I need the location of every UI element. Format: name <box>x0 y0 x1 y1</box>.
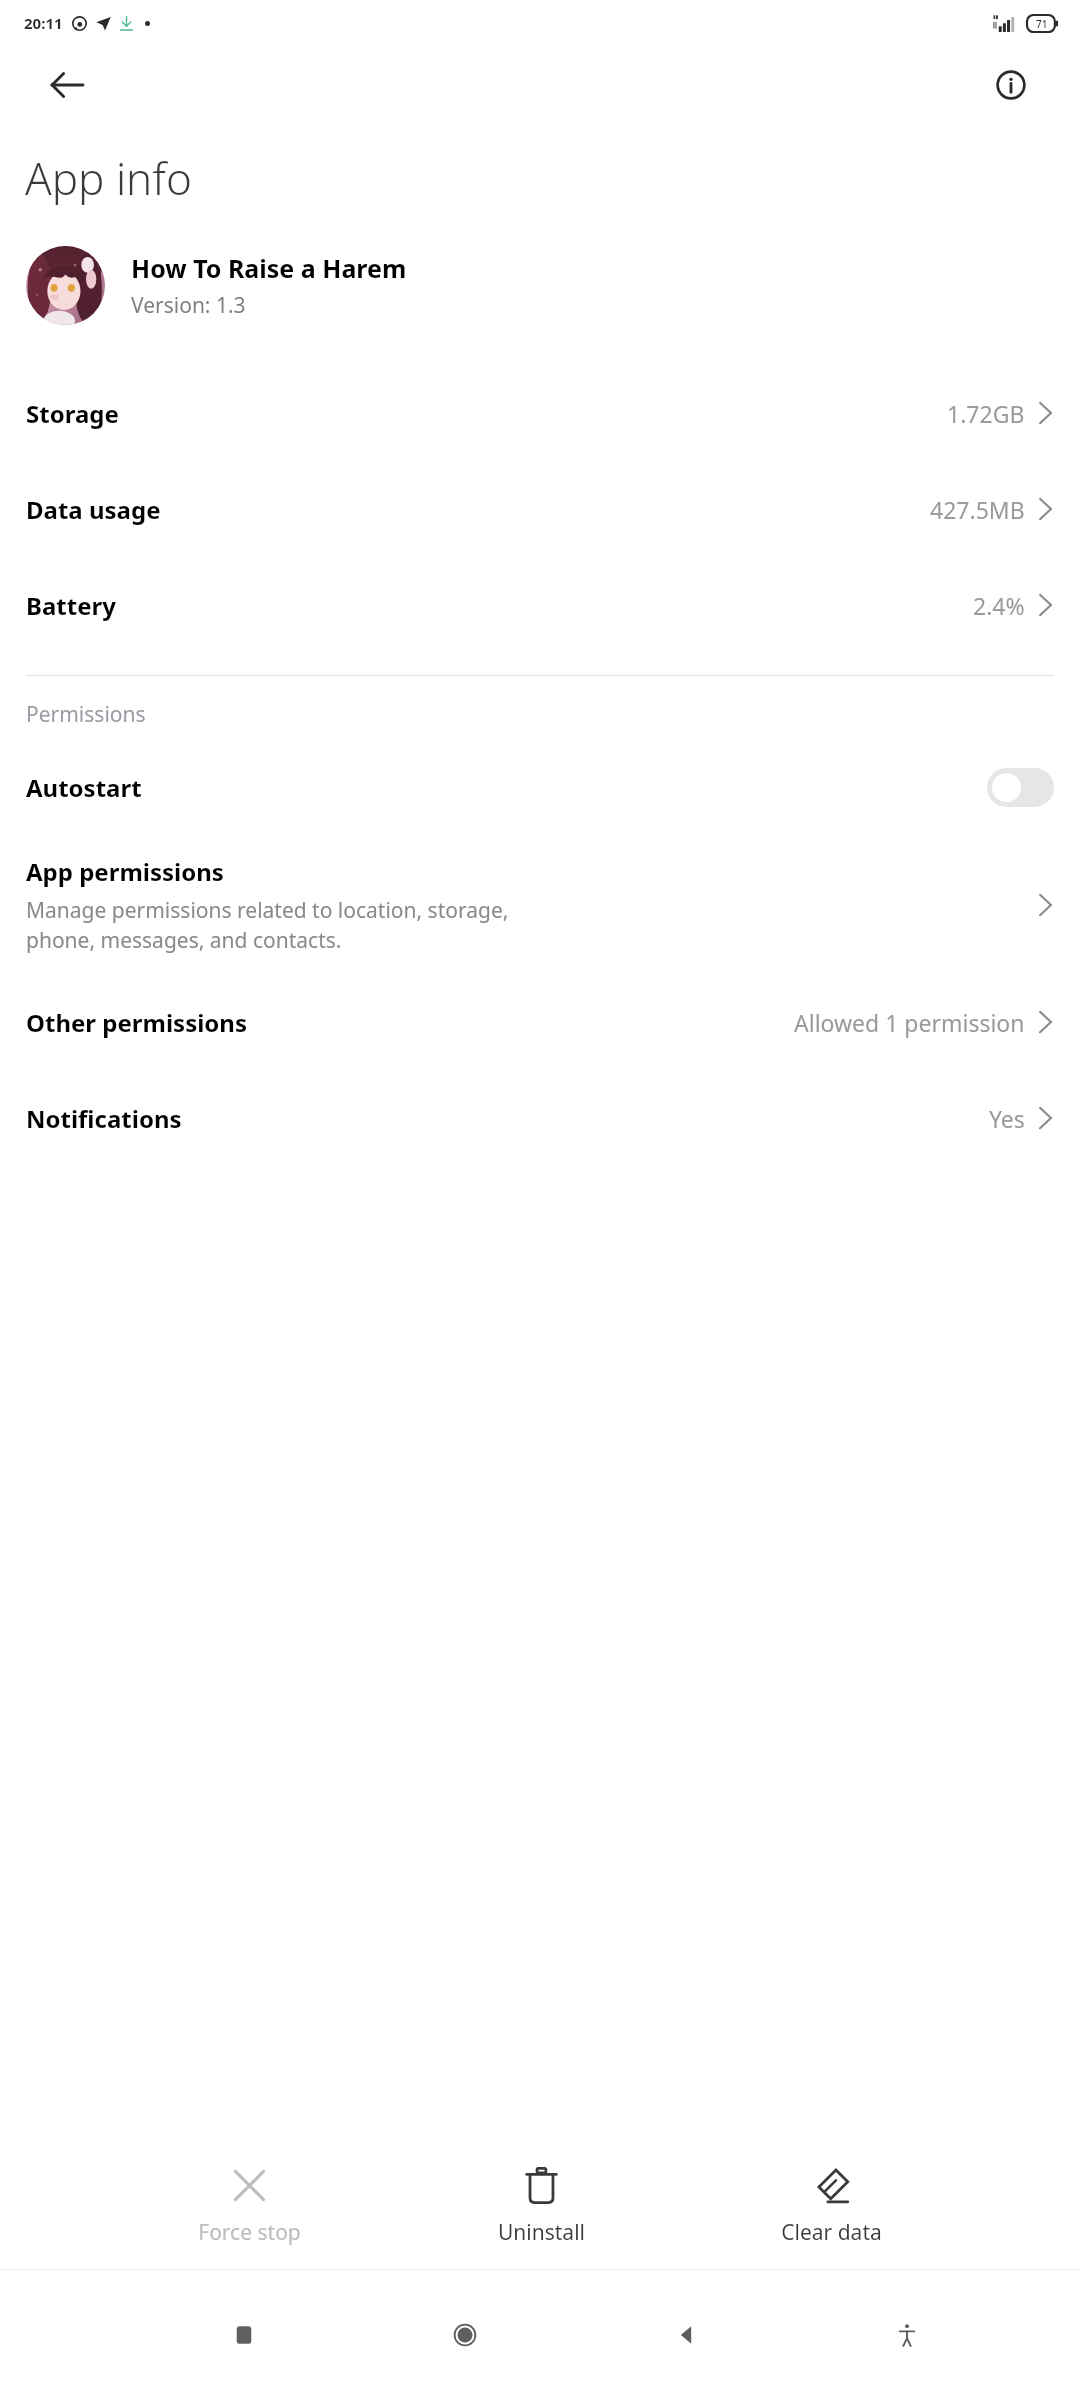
staticText: 1.72GB <box>947 398 1025 429</box>
staticText: Allowed 1 permission <box>794 1007 1025 1038</box>
staticText: 20:11 <box>24 13 63 33</box>
button[interactable]: Notifications <box>0 1070 1080 1166</box>
staticText: Version: 1.3 <box>131 291 246 320</box>
button[interactable]: Autostart <box>0 739 1080 835</box>
button[interactable]: Home <box>432 2302 498 2368</box>
button[interactable]: Clear data <box>773 2161 890 2253</box>
staticText: Autostart <box>26 771 142 804</box>
staticText: Permissions <box>26 700 146 729</box>
button[interactable]: Force stop <box>190 2161 309 2253</box>
button[interactable]: Accessibility <box>874 2302 940 2368</box>
staticText: Notifications <box>26 1102 182 1135</box>
staticText: Manage permissions related to location, … <box>26 896 509 954</box>
staticText: App info <box>25 148 192 208</box>
button[interactable]: Back <box>40 58 94 112</box>
button[interactable]: Recents <box>211 2302 277 2368</box>
staticText: Yes <box>989 1103 1025 1134</box>
button[interactable]: Autostart toggle, off <box>987 768 1054 807</box>
staticText: Storage <box>26 397 119 430</box>
staticText: 71 <box>1036 17 1048 31</box>
button[interactable]: Back <box>653 2302 719 2368</box>
button[interactable]: Uninstall <box>490 2161 593 2253</box>
staticText: Data usage <box>26 493 161 526</box>
staticText: Clear data <box>781 2218 882 2247</box>
staticText: 2.4% <box>973 590 1025 621</box>
button[interactable]: Other permissions <box>0 974 1080 1070</box>
button[interactable]: App permissions <box>0 835 1080 974</box>
button[interactable]: Battery <box>0 557 1080 653</box>
staticText: 427.5MB <box>930 494 1025 525</box>
staticText: How To Raise a Harem <box>131 251 407 285</box>
staticText: Battery <box>26 589 116 622</box>
button[interactable]: Data usage <box>0 461 1080 557</box>
staticText: App permissions <box>26 855 224 888</box>
button[interactable]: Storage <box>0 365 1080 461</box>
staticText: Force stop <box>198 2218 301 2247</box>
staticText: Other permissions <box>26 1006 248 1039</box>
button[interactable]: App details <box>984 58 1038 112</box>
staticText: Uninstall <box>498 2218 585 2247</box>
